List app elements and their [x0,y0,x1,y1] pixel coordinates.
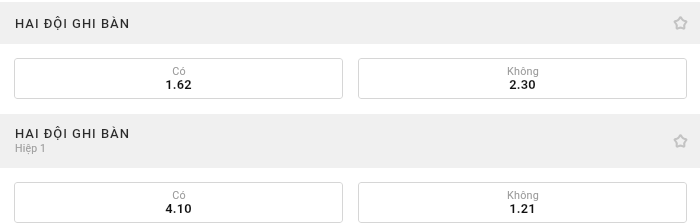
button[interactable]: HAI ĐỘI GHI BÀN [0,2,700,44]
staticText: 4.10 [165,201,192,216]
button[interactable]: Không [358,58,687,99]
staticText: Hiệp 1 [15,142,47,154]
staticText: Có [172,65,186,78]
staticText: Có [172,189,186,202]
staticText: 1.21 [509,201,536,216]
button[interactable]: Không [358,182,687,223]
button[interactable]: HAI ĐỘI GHI BÀN [0,114,700,168]
button[interactable]: Có [14,58,343,99]
staticText: 2.30 [509,77,536,92]
button[interactable]: Favourite [668,129,692,153]
staticText: Không [507,65,539,78]
button[interactable]: Có [14,182,343,223]
button[interactable]: Favourite [668,11,692,35]
staticText: 1.62 [165,77,192,92]
staticText: Không [507,189,539,202]
staticText: HAI ĐỘI GHI BÀN [15,16,130,31]
staticText: HAI ĐỘI GHI BÀN [15,126,130,141]
